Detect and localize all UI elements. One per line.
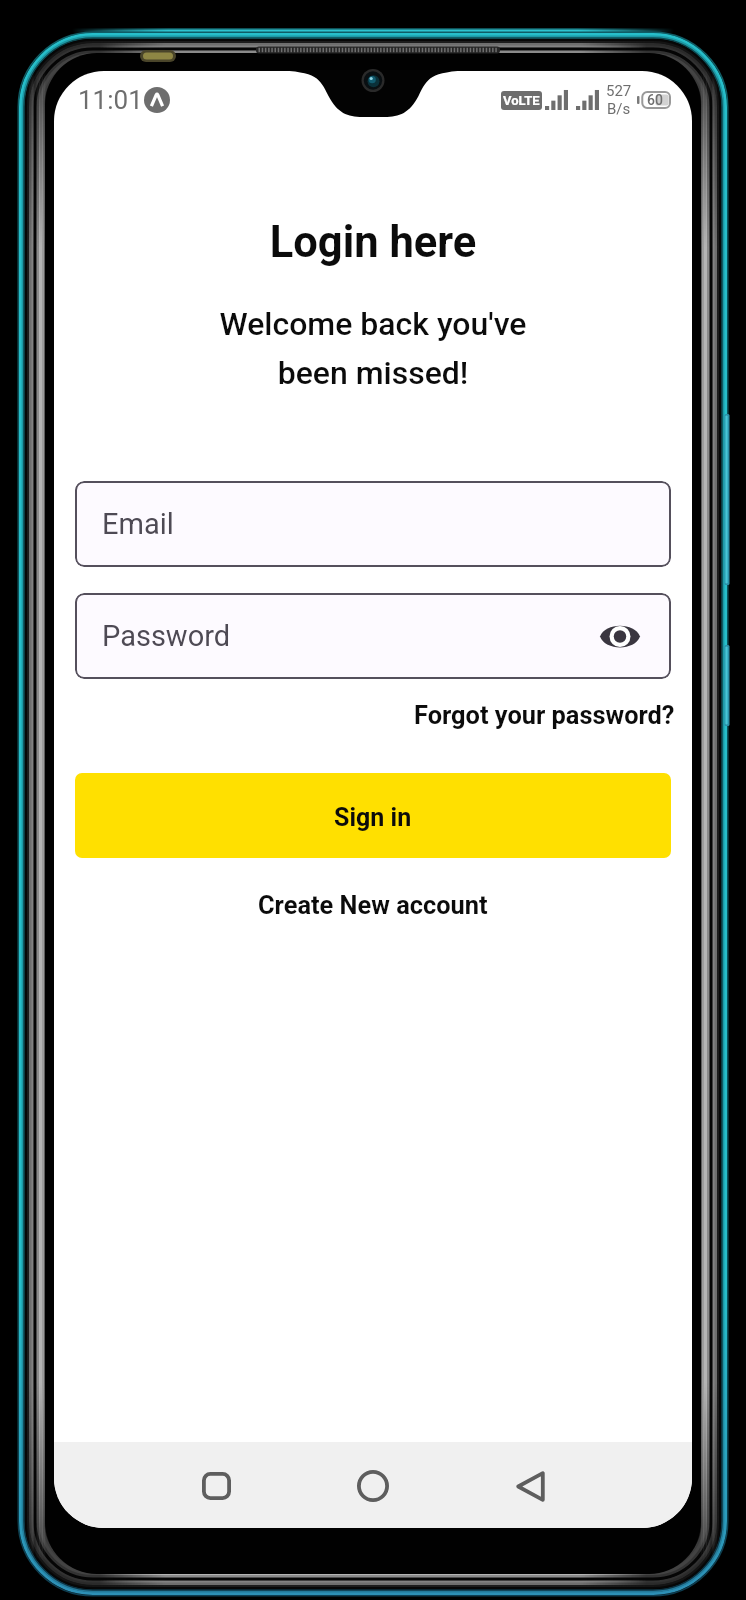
button[interactable]: Recent apps <box>183 1453 249 1519</box>
staticText: VoLTE <box>503 93 540 108</box>
staticText: 527 <box>606 82 632 100</box>
button[interactable]: Forgot your password? <box>410 695 679 735</box>
button[interactable]: Home <box>340 1453 406 1519</box>
button[interactable]: Show password <box>597 613 643 659</box>
staticText: Welcome back you've been missed! <box>54 305 692 392</box>
button[interactable]: Email <box>75 481 671 567</box>
staticText: 11:01 <box>78 85 143 115</box>
button[interactable]: Password <box>75 593 671 679</box>
staticText: Login here <box>54 217 692 268</box>
staticText: Forgot your password? <box>414 700 675 730</box>
button[interactable]: Back <box>497 1453 563 1519</box>
other: Battery 60 percent <box>637 92 670 108</box>
staticText: Email <box>102 507 174 541</box>
staticText: Password <box>102 619 231 653</box>
staticText: Create New account <box>258 890 488 920</box>
staticText: 60 <box>647 92 663 108</box>
staticText: Sign in <box>334 803 412 832</box>
other: Assistant <box>144 87 170 113</box>
button[interactable]: Sign in <box>75 773 671 858</box>
button[interactable]: Create New account <box>252 884 494 926</box>
staticText: B/s <box>607 100 631 118</box>
